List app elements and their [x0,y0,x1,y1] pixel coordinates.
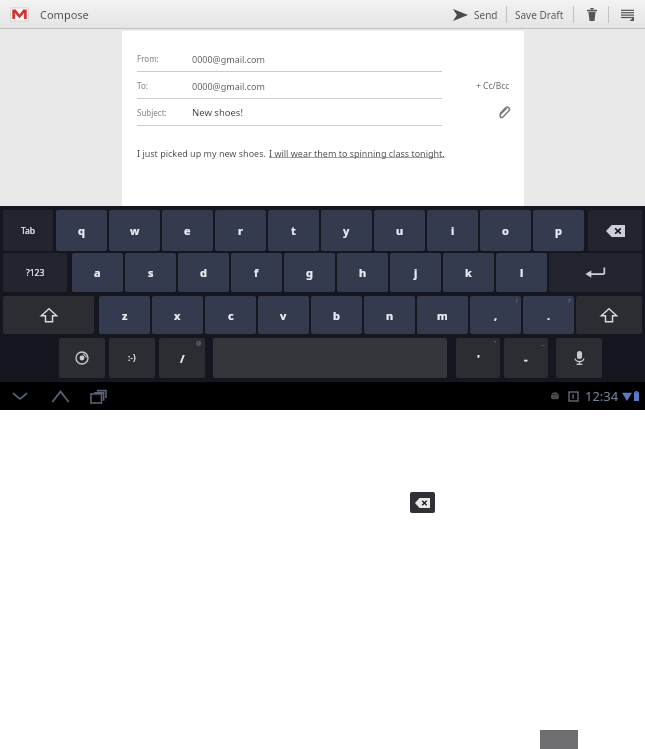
button[interactable]: To: [122,72,524,99]
staticText: p [555,223,562,238]
staticText: I will wear them to spinning class tonig… [269,147,445,159]
button[interactable]: Tab [3,210,53,251]
button[interactable]: u [374,210,425,251]
button[interactable]: v [258,296,309,334]
button[interactable]: d [178,253,229,292]
staticText: x [174,308,181,323]
staticText: z [122,308,128,323]
button[interactable]: r [215,210,266,251]
staticText: a [94,265,101,280]
staticText: u [396,223,404,238]
button[interactable]: o [480,210,531,251]
button[interactable]: Recent apps [86,384,110,408]
staticText: 0000@gmail.com [192,53,265,65]
staticText: c [228,308,234,323]
staticText: . [547,308,551,323]
staticText: ? [568,297,571,305]
button[interactable]: . [523,296,574,334]
button[interactable]: i [427,210,478,251]
staticText: - [524,351,528,366]
button[interactable]: t [268,210,319,251]
staticText: g [306,265,313,280]
staticText: ' [477,351,480,366]
staticText: 12:34 [585,387,619,405]
staticText: l [520,265,524,280]
button[interactable]: Shift [3,296,94,334]
staticText: From: [137,53,159,64]
staticText: Tab [21,225,36,237]
staticText: + Cc/Bcc [476,80,510,92]
button[interactable]: Voice input [556,338,602,378]
staticText: Compose [40,7,89,22]
button[interactable]: a [72,253,123,292]
staticText: 0000@gmail.com [192,80,265,92]
button[interactable]: Shift [576,296,642,334]
button[interactable]: e [162,210,213,251]
button[interactable]: b [311,296,362,334]
button[interactable]: q [56,210,107,251]
staticText: I just picked up my new shoes. [137,147,269,159]
staticText: b [333,308,340,323]
button[interactable]: Back [8,384,32,408]
button[interactable]: To: action [476,80,510,92]
button[interactable]: s [125,253,176,292]
staticText: w [130,223,140,238]
staticText: s [148,265,154,280]
staticText: ! [516,297,518,305]
button[interactable]: f [231,253,282,292]
button[interactable]: Backspace [588,210,642,251]
button[interactable]: Subject: [122,99,524,126]
staticText: @ [196,339,202,347]
button[interactable]: Save Draft [515,0,564,29]
button[interactable]: g [284,253,335,292]
staticText: i [451,223,455,238]
staticText: / [180,351,185,366]
staticText: o [502,223,509,238]
button[interactable]: , [470,296,521,334]
staticText: ?123 [26,267,45,279]
button[interactable]: h [337,253,388,292]
button[interactable]: k [443,253,494,292]
button[interactable]: Subject: action [497,106,510,119]
staticText: Send [474,8,498,22]
button[interactable]: l [496,253,547,292]
button[interactable]: Send [453,0,498,29]
staticText: f [254,265,259,280]
staticText: e [184,223,191,238]
button[interactable]: Gmail [9,4,30,25]
button[interactable]: x [152,296,203,334]
button[interactable]: Backspace [410,492,435,513]
button[interactable]: p [533,210,584,251]
staticText: m [437,308,448,323]
staticText: t [291,223,296,238]
button[interactable]: y [321,210,372,251]
button[interactable]: m [417,296,468,334]
button[interactable]: More options [617,0,637,29]
staticText: r [238,223,243,238]
button[interactable]: ' [456,338,500,378]
button[interactable]: z [99,296,150,334]
staticText: d [200,265,207,280]
button[interactable]: - [504,338,548,378]
staticText: q [78,223,85,238]
button[interactable]: ?123 [3,253,67,292]
button[interactable]: Home [48,384,72,408]
button[interactable]: c [205,296,256,334]
button[interactable]: w [109,210,160,251]
button[interactable]: :-) [109,338,155,378]
button[interactable]: n [364,296,415,334]
staticText: To: [137,80,148,91]
staticText: , [494,308,498,323]
staticText: Save Draft [515,8,564,22]
button[interactable]: / [159,338,205,378]
button[interactable]: Change language [59,338,105,378]
button[interactable]: Delete [583,0,601,29]
staticText: Subject: [137,107,167,118]
button[interactable]: From: [122,45,524,72]
button[interactable]: j [390,253,441,292]
button[interactable]: Enter [549,253,642,292]
staticText: j [414,265,418,280]
staticText: v [280,308,287,323]
staticText: y [343,223,350,238]
